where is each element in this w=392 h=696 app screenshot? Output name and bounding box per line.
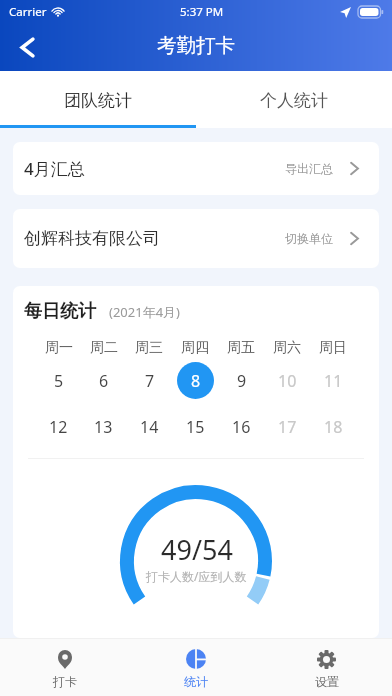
button[interactable]: 个人统计 [196,71,392,125]
staticText: 设置 [315,674,339,689]
staticText: 周四 [181,339,209,357]
button[interactable]: 16 [223,408,260,445]
staticText: 5 [54,370,64,392]
button[interactable]: 团队统计 [0,71,196,125]
button[interactable]: 统计 [130,639,261,696]
staticText: 周三 [135,339,163,357]
staticText: 个人统计 [260,90,328,111]
staticText: 周六 [273,339,301,357]
staticText: 6 [99,370,109,392]
staticText: 18 [324,416,343,438]
staticText: 13 [94,416,113,438]
button[interactable]: 13 [85,408,122,445]
button[interactable]: 9 [223,362,260,399]
staticText: 11 [324,370,343,392]
button[interactable]: 4月汇总 [13,142,379,195]
staticText: 打卡 [53,674,77,689]
button[interactable]: 17 [269,408,306,445]
button[interactable]: 10 [269,362,306,399]
staticText: 周一 [45,339,73,357]
staticText: 打卡人数/应到人数 [146,568,247,584]
staticText: 5:37 PM [180,4,224,20]
button[interactable]: 6 [85,362,122,399]
staticText: 导出汇总 [285,161,333,176]
staticText: 周二 [90,339,118,357]
button[interactable]: 12 [40,408,77,445]
button[interactable]: 打卡 [0,639,130,696]
staticText: 考勤打卡 [157,33,235,58]
staticText: 14 [140,416,159,438]
staticText: 统计 [184,674,208,689]
staticText: Carrier [9,4,47,20]
staticText: 8 [191,370,201,392]
staticText: 15 [186,416,205,438]
staticText: 切换单位 [285,231,333,246]
button[interactable]: 15 [177,408,214,445]
staticText: 4月汇总 [24,157,85,180]
staticText: (2021年4月) [109,303,180,321]
staticText: 每日统计 [24,300,96,323]
button[interactable]: 创辉科技有限公司 [13,209,379,268]
button[interactable]: 设置 [261,639,392,696]
staticText: 周日 [319,339,347,357]
staticText: 12 [49,416,68,438]
staticText: 10 [278,370,297,392]
button[interactable]: 7 [131,362,168,399]
staticText: 49/54 [161,531,233,568]
button[interactable]: 11 [315,362,352,399]
staticText: 创辉科技有限公司 [24,228,160,249]
staticText: 17 [278,416,297,438]
staticText: 16 [232,416,251,438]
button[interactable]: 5 [40,362,77,399]
staticText: 团队统计 [64,90,132,111]
button[interactable]: Back [0,24,54,71]
staticText: 7 [145,370,155,392]
button[interactable]: 8 [177,362,214,399]
button[interactable]: 18 [315,408,352,445]
staticText: 周五 [227,339,255,357]
button[interactable]: 14 [131,408,168,445]
staticText: 9 [237,370,247,392]
